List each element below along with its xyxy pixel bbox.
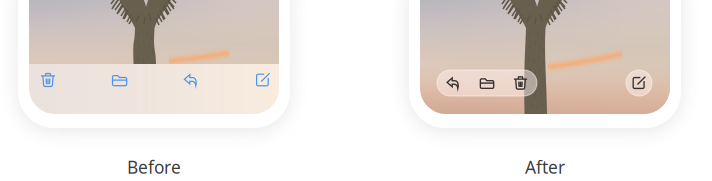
button[interactable]: Move to Folder	[107, 65, 133, 95]
button[interactable]: Move to Folder	[470, 70, 504, 96]
button[interactable]: Delete	[35, 65, 61, 95]
button[interactable]: Reply	[178, 65, 204, 95]
staticText: After	[525, 155, 565, 178]
button[interactable]: Delete	[504, 70, 537, 96]
button[interactable]: Reply	[437, 70, 470, 96]
staticText: Before	[127, 155, 181, 178]
button[interactable]: Compose	[250, 65, 276, 95]
button[interactable]: Compose	[626, 70, 652, 96]
